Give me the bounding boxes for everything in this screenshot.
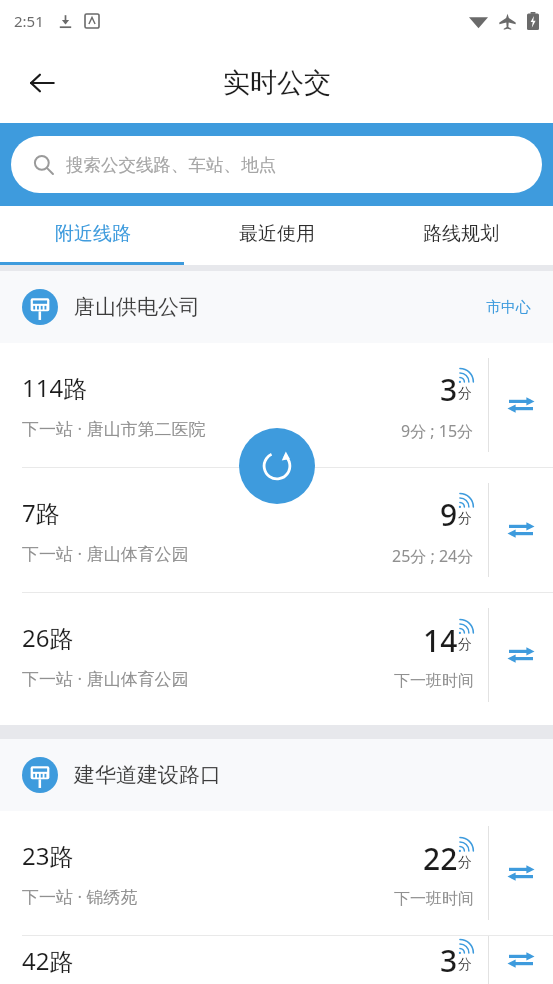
- button[interactable]: Switch direction: [489, 593, 553, 717]
- button[interactable]: 42路: [0, 936, 553, 984]
- staticText: 26路: [22, 621, 74, 654]
- button[interactable]: 唐山供电公司: [0, 271, 553, 343]
- staticText: 9: [440, 494, 458, 535]
- staticText: 搜索公交线路、车站、地点: [66, 154, 276, 176]
- staticText: 2:51: [14, 11, 44, 31]
- button[interactable]: Switch direction: [489, 468, 553, 592]
- staticText: 市中心: [486, 298, 531, 317]
- staticText: 25分 ; 24分: [392, 545, 474, 567]
- staticText: 最近使用: [239, 222, 315, 246]
- button[interactable]: 26路: [0, 593, 553, 717]
- staticText: 22: [423, 838, 458, 879]
- staticText: 3: [440, 940, 458, 981]
- staticText: 分: [458, 636, 472, 654]
- staticText: 分: [458, 854, 472, 872]
- staticText: 建华道建设路口: [74, 762, 221, 788]
- button[interactable]: 路线规划: [369, 206, 553, 262]
- staticText: 分: [458, 956, 472, 974]
- staticText: 42路: [22, 944, 74, 977]
- staticText: 附近线路: [55, 222, 131, 246]
- button[interactable]: 建华道建设路口: [0, 739, 553, 811]
- staticText: 路线规划: [423, 222, 499, 246]
- button[interactable]: Refresh: [239, 428, 315, 504]
- staticText: 下一站 · 唐山体育公园: [22, 542, 189, 565]
- staticText: 分: [458, 385, 472, 403]
- button[interactable]: 7路: [0, 468, 553, 592]
- staticText: 分: [458, 510, 472, 528]
- staticText: 下一站 · 唐山市第二医院: [22, 417, 206, 440]
- button[interactable]: 23路: [0, 811, 553, 935]
- staticText: 9分 ; 15分: [401, 420, 474, 442]
- staticText: 23路: [22, 839, 74, 872]
- staticText: 唐山供电公司: [74, 294, 200, 320]
- button[interactable]: Switch direction: [489, 811, 553, 935]
- button[interactable]: 最近使用: [185, 206, 369, 262]
- button[interactable]: Back: [18, 59, 66, 107]
- button[interactable]: Switch direction: [489, 343, 553, 467]
- staticText: 114路: [22, 371, 88, 404]
- staticText: 7路: [22, 496, 60, 529]
- staticText: 3: [440, 369, 458, 410]
- button[interactable]: 114路: [0, 343, 553, 467]
- button[interactable]: 搜索公交线路、车站、地点: [11, 136, 542, 193]
- staticText: 下一站 · 唐山体育公园: [22, 667, 189, 690]
- staticText: 下一班时间: [394, 671, 474, 691]
- staticText: 14: [423, 620, 458, 661]
- staticText: 实时公交: [223, 66, 331, 100]
- button[interactable]: Switch direction: [489, 936, 553, 984]
- staticText: 下一班时间: [394, 889, 474, 909]
- button[interactable]: 附近线路: [0, 206, 185, 262]
- staticText: 下一站 · 锦绣苑: [22, 885, 138, 908]
